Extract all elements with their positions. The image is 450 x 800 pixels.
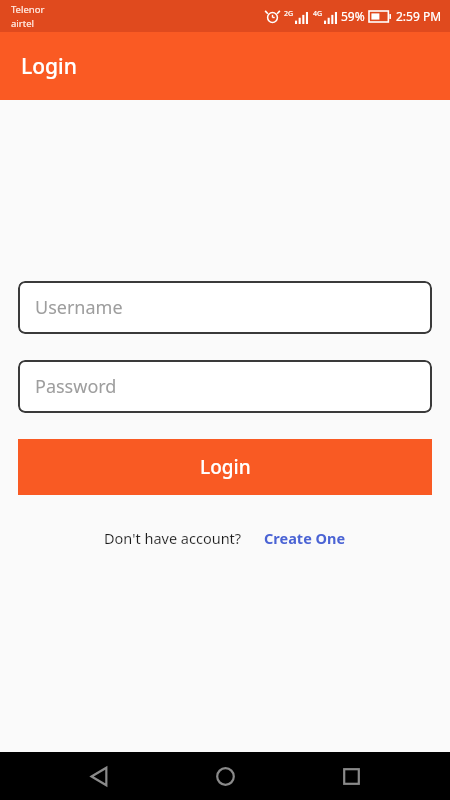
staticText: 2:59 PM xyxy=(396,8,442,24)
button[interactable]: Password xyxy=(18,360,432,413)
button[interactable]: Home xyxy=(204,755,246,797)
button[interactable]: Back xyxy=(78,755,120,797)
button[interactable]: Create One xyxy=(264,528,346,548)
staticText: Password xyxy=(35,374,117,399)
staticText: 4G xyxy=(313,9,323,19)
staticText: Username xyxy=(35,295,123,320)
staticText: Create One xyxy=(264,528,346,548)
staticText: 59% xyxy=(341,8,365,24)
staticText: 2G xyxy=(284,9,294,19)
staticText: Telenor xyxy=(11,3,45,16)
staticText: Don't have account? xyxy=(104,528,242,548)
staticText: airtel xyxy=(11,17,34,30)
button[interactable]: Recent apps xyxy=(330,755,372,797)
button[interactable]: Username xyxy=(18,281,432,334)
staticText: Login xyxy=(200,454,251,480)
staticText: Login xyxy=(21,52,77,81)
button[interactable]: Login xyxy=(18,439,432,495)
